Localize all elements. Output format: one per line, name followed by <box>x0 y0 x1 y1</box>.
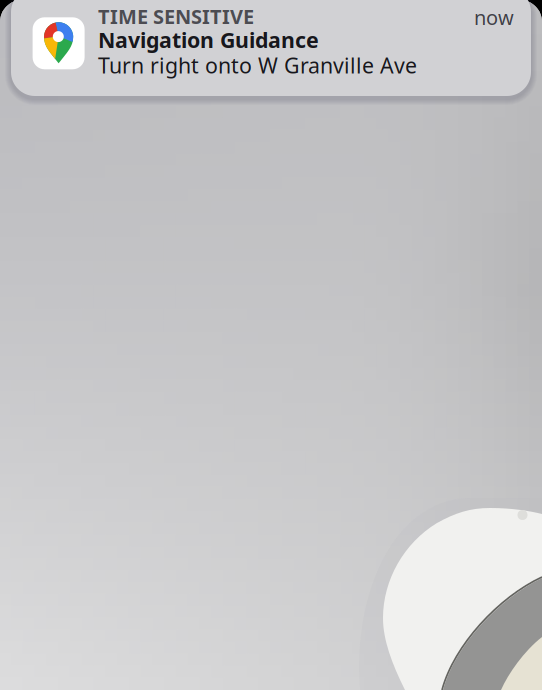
staticText: now <box>474 4 514 31</box>
staticText: Navigation Guidance <box>98 25 319 54</box>
button[interactable]: TIME SENSITIVE <box>11 0 531 96</box>
staticText: TIME SENSITIVE <box>98 3 254 30</box>
staticText: Turn right onto W Granville Ave <box>98 51 417 79</box>
